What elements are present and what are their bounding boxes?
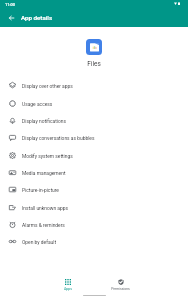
staticText: Files [0,60,188,68]
button[interactable]: Picture-in-picture [0,181,188,198]
button[interactable]: Alarms & reminders [0,216,188,233]
staticText: Display over other apps [22,83,73,89]
button[interactable]: Open by default [0,233,188,250]
staticText: App details [21,14,53,21]
button[interactable]: Media management [0,164,188,181]
button[interactable]: Display notifications [0,112,188,129]
staticText: Media management [22,170,66,176]
staticText: 11:00 [5,2,15,7]
staticText: Open by default [22,239,57,245]
staticText: Modify system settings [22,153,73,159]
button[interactable]: Usage access [0,95,188,112]
button[interactable]: Install unknown apps [0,199,188,216]
button[interactable]: Back [4,11,18,25]
staticText: Usage access [22,101,53,107]
staticText: Display conversations as bubbles [22,135,95,141]
staticText: Apps [64,287,72,291]
staticText: Alarms & reminders [22,222,65,228]
staticText: Install unknown apps [22,205,69,211]
staticText: Permissions [111,287,130,291]
button[interactable]: Display over other apps [0,77,188,94]
staticText: Picture-in-picture [22,187,59,193]
button[interactable]: Modify system settings [0,147,188,164]
staticText: Display notifications [22,118,67,124]
button[interactable]: Apps [41,273,94,295]
button[interactable]: Permissions [94,273,147,295]
button[interactable]: Display conversations as bubbles [0,129,188,146]
